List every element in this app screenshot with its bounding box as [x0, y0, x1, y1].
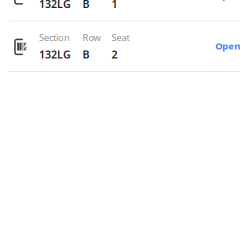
staticText: 132LG [39, 47, 71, 61]
staticText: Open [215, 40, 240, 52]
staticText: Section [39, 31, 70, 44]
staticText: B [82, 47, 89, 61]
staticText: 132LG [39, 0, 71, 11]
staticText: B [82, 0, 89, 11]
button[interactable]: Section [0, 21, 250, 71]
staticText: 1 [111, 0, 117, 11]
staticText: Open [215, 0, 240, 1]
button[interactable]: Section [0, 0, 250, 20]
staticText: Row [82, 31, 100, 44]
staticText: 2 [111, 47, 117, 61]
staticText: Seat [111, 31, 129, 44]
